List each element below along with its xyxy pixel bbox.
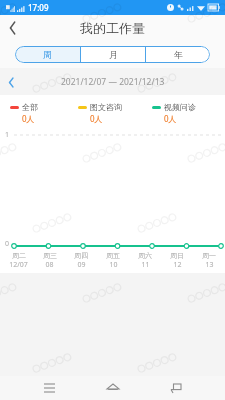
staticText: 周六 (138, 251, 152, 260)
staticText: 年 (174, 49, 183, 60)
staticText: 0人 (90, 113, 103, 124)
staticText: 周五 (106, 251, 120, 260)
staticText: 周三 (43, 251, 57, 260)
staticText: 10 (109, 260, 118, 270)
staticText: 09 (77, 260, 86, 270)
button[interactable]: 月 (81, 46, 145, 63)
button[interactable]: Home (98, 376, 128, 400)
staticText: 周二 (12, 251, 26, 260)
staticText: 08 (45, 260, 54, 270)
button[interactable]: 全部 (10, 102, 78, 124)
staticText: 周四 (74, 251, 88, 260)
staticText: 月 (109, 49, 118, 60)
button[interactable]: Back (161, 376, 191, 400)
staticText: 全部 (22, 102, 38, 112)
staticText: 0 (5, 239, 10, 249)
staticText: 我的工作量 (80, 20, 145, 36)
staticText: 图文咨询 (90, 102, 122, 112)
staticText: 视频问诊 (164, 102, 196, 112)
staticText: 2021/12/07 — 2021/12/13 (61, 76, 165, 88)
button[interactable]: 视频问诊 (152, 102, 219, 124)
staticText: 1 (5, 130, 10, 140)
staticText: 0人 (22, 113, 35, 124)
staticText: 周 (43, 49, 52, 60)
button[interactable]: Back (0, 15, 26, 40)
button[interactable]: Recents (34, 376, 64, 400)
button[interactable]: 周 (15, 46, 80, 63)
button[interactable]: 年 (146, 46, 210, 63)
staticText: 11 (141, 260, 150, 270)
button[interactable]: 图文咨询 (78, 102, 152, 124)
button[interactable]: Previous period (3, 74, 19, 90)
staticText: 周日 (170, 251, 184, 260)
staticText: 17:09 (28, 2, 49, 13)
staticText: 周一 (202, 251, 216, 260)
staticText: 12/07 (9, 260, 28, 270)
staticText: 12 (173, 260, 182, 270)
staticText: 13 (205, 260, 214, 270)
staticText: 0人 (164, 113, 177, 124)
